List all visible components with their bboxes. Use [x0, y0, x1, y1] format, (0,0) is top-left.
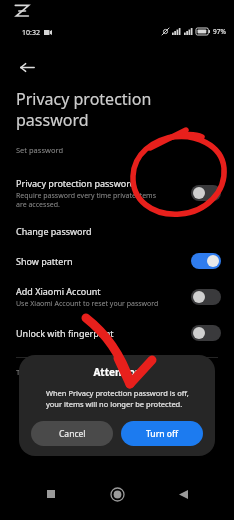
button[interactable]: Home — [102, 479, 132, 509]
button[interactable]: Recent apps — [36, 479, 66, 509]
staticText: This password protects the following ite… — [16, 367, 167, 377]
button[interactable]: Unlock with fingerprint — [0, 317, 234, 349]
staticText: Show pattern — [16, 255, 73, 267]
button[interactable]: Toggle off — [191, 325, 221, 341]
staticText: Privacy protection password — [16, 177, 136, 189]
staticText: Attention — [93, 365, 142, 379]
button[interactable]: Toggle on — [191, 253, 221, 269]
staticText: Add Xiaomi Account — [16, 285, 101, 297]
button[interactable]: Change password — [0, 217, 234, 245]
button[interactable]: Back — [168, 479, 198, 509]
staticText: Change password — [16, 225, 92, 237]
button[interactable]: Show pattern — [0, 245, 234, 277]
staticText: Turn off — [146, 428, 179, 440]
staticText: 97% — [213, 27, 226, 36]
button[interactable]: Toggle off — [191, 185, 221, 201]
button[interactable]: Cancel — [31, 421, 113, 446]
staticText: Unlock with fingerprint — [16, 327, 114, 339]
button[interactable]: Privacy protection password — [0, 169, 234, 217]
staticText: Use Xiaomi Account to reset your passwor… — [16, 299, 159, 309]
button[interactable]: Add Xiaomi Account — [0, 277, 234, 317]
staticText: Privacy protection password — [16, 88, 152, 131]
staticText: When Privacy protection password is off,… — [46, 388, 189, 409]
staticText: Set password — [16, 145, 64, 155]
button[interactable]: Toggle off — [191, 289, 221, 305]
staticText: Cancel — [59, 428, 86, 440]
button[interactable]: Back — [10, 50, 44, 84]
button[interactable]: Turn off — [121, 421, 203, 446]
staticText: Require password every time private item… — [16, 191, 157, 209]
staticText: 10:32 — [22, 28, 40, 38]
